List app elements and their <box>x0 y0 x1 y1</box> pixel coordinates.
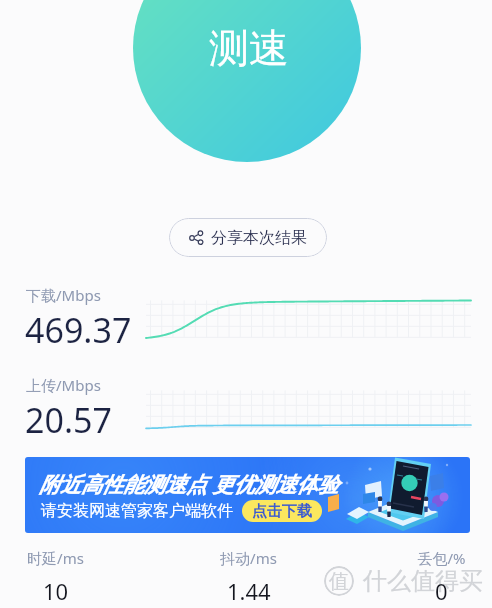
staticText: 抖动/ms <box>220 548 277 568</box>
staticText: 什么值得买 <box>363 566 483 596</box>
staticText: 值 <box>329 569 349 594</box>
button[interactable]: 点击下载 <box>242 500 322 522</box>
button[interactable]: 分享本次结果 <box>169 218 327 257</box>
button[interactable]: 附近高性能测速点 更优测速体验 <box>25 457 470 533</box>
staticText: 请安装网速管家客户端软件 <box>41 501 233 521</box>
staticText: 丢包/% <box>417 548 466 568</box>
button[interactable]: 丢包/% <box>381 548 492 608</box>
staticText: 上传/Mbps <box>26 375 101 395</box>
staticText: 分享本次结果 <box>211 228 307 248</box>
staticText: 下载/Mbps <box>26 285 101 305</box>
staticText: 时延/ms <box>27 548 84 568</box>
staticText: 0 <box>435 576 448 606</box>
staticText: 测速 <box>209 23 289 73</box>
staticText: 10 <box>43 576 69 606</box>
staticText: 附近高性能测速点 更优测速体验 <box>39 470 339 499</box>
button[interactable]: 时延/ms <box>0 548 115 608</box>
staticText: 20.57 <box>25 397 112 443</box>
staticText: 1.44 <box>227 576 271 606</box>
staticText: 点击下载 <box>252 502 312 521</box>
staticText: 469.37 <box>25 307 132 353</box>
button[interactable]: 抖动/ms <box>188 548 308 608</box>
